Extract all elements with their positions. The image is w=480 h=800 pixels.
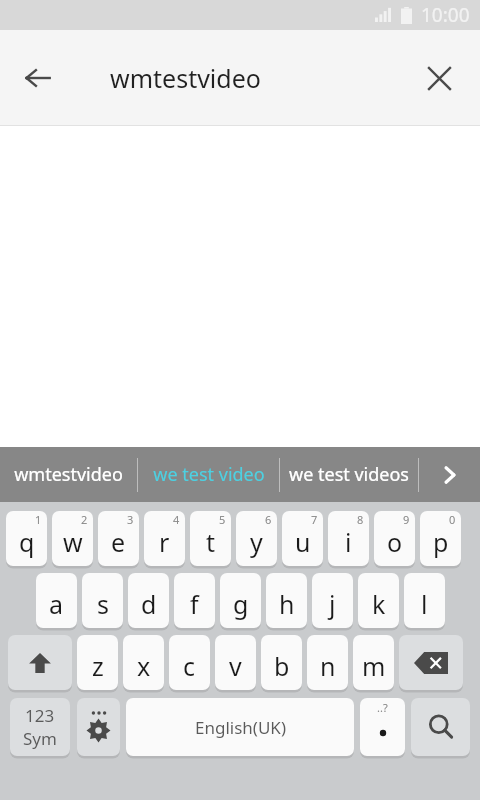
staticText: we test video (153, 462, 265, 487)
staticText: ..? (377, 700, 388, 715)
staticText: o (387, 525, 403, 559)
button[interactable]: Clear (412, 51, 466, 105)
button[interactable]: Search (411, 698, 470, 756)
staticText: 1 (35, 512, 42, 527)
button[interactable]: n (307, 635, 348, 690)
button[interactable]: 1 (6, 511, 47, 566)
button[interactable]: Back (10, 50, 66, 106)
staticText: z (92, 649, 104, 683)
staticText: 10:00 (421, 2, 470, 28)
button[interactable]: 2 (52, 511, 93, 566)
button[interactable]: 5 (190, 511, 231, 566)
staticText: h (279, 587, 295, 621)
staticText: 6 (265, 512, 272, 527)
staticText: n (320, 649, 336, 683)
button[interactable]: 7 (282, 511, 323, 566)
staticText: c (183, 649, 196, 683)
button[interactable]: 9 (374, 511, 415, 566)
staticText: 8 (357, 512, 364, 527)
button[interactable]: f (174, 573, 215, 628)
button[interactable]: Backspace (399, 635, 463, 690)
button[interactable]: 6 (236, 511, 277, 566)
staticText: j (329, 587, 336, 621)
staticText: 9 (403, 512, 410, 527)
staticText: 123 (25, 704, 55, 727)
button[interactable]: 8 (328, 511, 369, 566)
staticText: Sym (23, 727, 57, 750)
button[interactable]: More suggestions (419, 447, 480, 502)
button[interactable]: l (404, 573, 445, 628)
staticText: 5 (219, 512, 226, 527)
button[interactable]: 123 (10, 698, 70, 756)
staticText: wmtestvideo (14, 462, 123, 487)
button[interactable]: j (312, 573, 353, 628)
staticText: x (137, 649, 151, 683)
button[interactable]: 4 (144, 511, 185, 566)
button[interactable]: 3 (98, 511, 139, 566)
staticText: 3 (127, 512, 134, 527)
staticText: d (141, 587, 157, 621)
button[interactable]: 0 (420, 511, 461, 566)
staticText: 2 (81, 512, 88, 527)
button[interactable]: we test video (138, 447, 279, 502)
staticText: i (345, 525, 352, 559)
staticText: wmtestvideo (110, 61, 261, 95)
button[interactable]: ..? (360, 698, 405, 756)
button[interactable]: c (169, 635, 210, 690)
button[interactable]: wmtestvideo (0, 447, 137, 502)
staticText: e (111, 525, 126, 559)
button[interactable]: we test videos (280, 447, 418, 502)
staticText: 7 (311, 512, 318, 527)
button[interactable]: x (123, 635, 164, 690)
staticText: v (229, 649, 242, 683)
button[interactable]: Space (126, 698, 354, 756)
staticText: y (250, 525, 263, 559)
button[interactable]: Settings (77, 698, 120, 756)
staticText: m (362, 649, 386, 683)
staticText: 4 (173, 512, 180, 527)
button[interactable]: m (353, 635, 394, 690)
button[interactable]: z (77, 635, 118, 690)
staticText: a (49, 587, 64, 621)
button[interactable]: h (266, 573, 307, 628)
button[interactable]: s (82, 573, 123, 628)
button[interactable]: Shift (8, 635, 72, 690)
button[interactable]: a (36, 573, 77, 628)
staticText: s (97, 587, 109, 621)
staticText: u (295, 525, 311, 559)
button[interactable]: b (261, 635, 302, 690)
button[interactable]: v (215, 635, 256, 690)
staticText: we test videos (289, 462, 409, 487)
staticText: b (274, 649, 290, 683)
button[interactable]: g (220, 573, 261, 628)
staticText: English(UK) (195, 716, 286, 739)
staticText: t (206, 525, 216, 559)
staticText: r (159, 525, 170, 559)
staticText: p (433, 525, 449, 559)
staticText: k (372, 587, 386, 621)
staticText: l (421, 587, 428, 621)
staticText: q (19, 525, 35, 559)
staticText: g (233, 587, 249, 621)
staticText: w (63, 525, 83, 559)
button[interactable]: d (128, 573, 169, 628)
staticText: f (190, 587, 199, 621)
staticText: 0 (449, 512, 456, 527)
button[interactable]: k (358, 573, 399, 628)
